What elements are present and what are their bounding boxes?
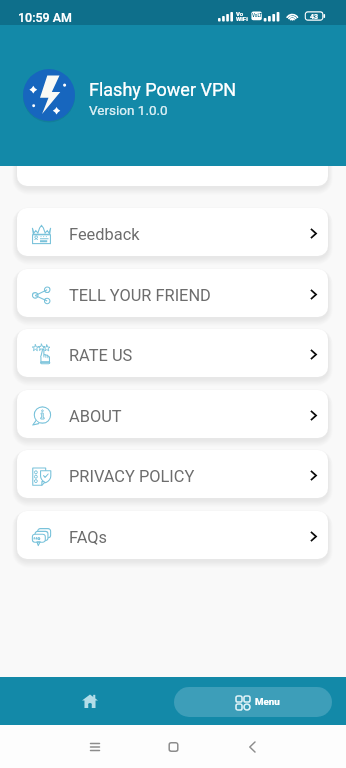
staticText: 43: [310, 13, 319, 21]
staticText: VoLTE: [252, 13, 265, 18]
button[interactable]: PRIVACY POLICY: [17, 450, 328, 498]
staticText: 10:59 AM: [18, 10, 73, 25]
staticText: Flashy Power VPN: [89, 79, 237, 100]
button[interactable]: Feedback: [17, 208, 328, 256]
staticText: Version 1.0.0: [89, 102, 168, 118]
staticText: FAQs: [69, 528, 108, 547]
button[interactable]: TELL YOUR FRIEND: [17, 269, 328, 317]
button[interactable]: ABOUT: [17, 390, 328, 438]
staticText: RATE US: [69, 346, 133, 365]
staticText: Menu: [255, 696, 280, 707]
staticText: Feedback: [69, 225, 140, 244]
button[interactable]: Menu: [174, 687, 332, 717]
staticText: Vo WiFi: [236, 10, 248, 23]
button[interactable]: FAQs: [17, 511, 328, 559]
staticText: TELL YOUR FRIEND: [69, 286, 211, 305]
staticText: ABOUT: [69, 407, 122, 426]
button[interactable]: RATE US: [17, 329, 328, 377]
staticText: PRIVACY POLICY: [69, 467, 195, 486]
button[interactable]: Home: [62, 677, 119, 725]
